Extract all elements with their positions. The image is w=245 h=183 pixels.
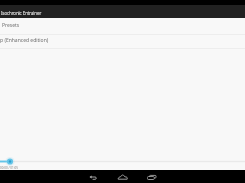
button[interactable]: p (Enhanced edition) — [0, 34, 245, 48]
button[interactable]: Home — [115, 170, 131, 183]
staticText: Isochronic Entrainer — [1, 10, 42, 16]
staticText: p (Enhanced edition) — [0, 37, 49, 44]
button[interactable]: Presets — [0, 18, 245, 35]
staticText: 00:00 / 01:05 — [0, 166, 19, 170]
button[interactable]: Isochronic Entrainer — [0, 5, 245, 18]
button[interactable]: Recent apps — [144, 170, 160, 183]
button[interactable]: Back — [85, 170, 101, 183]
staticText: Presets — [2, 22, 20, 29]
